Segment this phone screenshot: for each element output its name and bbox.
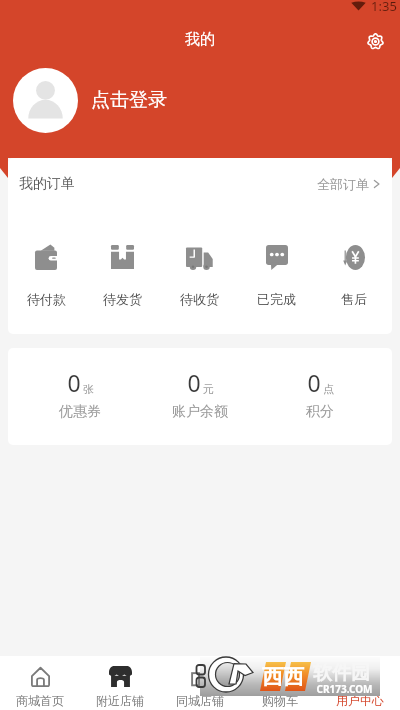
staticText: 0 xyxy=(67,367,81,398)
staticText: 购物车 xyxy=(262,693,298,708)
button[interactable]: 售后 xyxy=(315,210,392,334)
button[interactable]: Settings xyxy=(360,26,390,56)
staticText: 同城店铺 xyxy=(176,693,224,708)
staticText: 张 xyxy=(83,382,94,396)
staticText: 待发货 xyxy=(103,291,142,307)
staticText: 我的订单 xyxy=(19,175,75,193)
staticText: 全部订单 xyxy=(317,176,369,192)
staticText: 点 xyxy=(323,382,334,396)
button[interactable]: 已完成 xyxy=(238,210,315,334)
staticText: 已完成 xyxy=(257,291,296,307)
button[interactable]: 附近店铺 xyxy=(80,656,160,710)
button[interactable]: 0 xyxy=(20,367,140,421)
staticText: 待付款 xyxy=(27,291,66,307)
staticText: 优惠券 xyxy=(59,403,101,421)
button[interactable]: 用户中心 xyxy=(320,656,400,710)
staticText: 积分 xyxy=(306,403,334,421)
button[interactable]: 购物车 xyxy=(240,656,320,710)
button[interactable]: 待付款 xyxy=(8,210,84,334)
staticText: 0 xyxy=(307,367,321,398)
staticText: 商城首页 xyxy=(16,693,64,708)
button[interactable]: 商城首页 xyxy=(0,656,80,710)
button[interactable]: 0 xyxy=(260,367,380,421)
staticText: 待收货 xyxy=(180,291,219,307)
staticText: 附近店铺 xyxy=(96,693,144,708)
staticText: 1:35 xyxy=(371,0,397,15)
staticText: 我的 xyxy=(185,30,215,49)
staticText: 软件园 xyxy=(313,661,370,685)
staticText: 账户余额 xyxy=(172,403,228,421)
staticText: 元 xyxy=(203,382,214,396)
staticText: 用户中心 xyxy=(336,693,384,708)
staticText: 西西 xyxy=(262,664,304,690)
staticText: CR173.COM xyxy=(316,682,373,696)
staticText: 0 xyxy=(187,367,201,398)
button[interactable]: 我的订单 xyxy=(8,158,392,210)
staticText: 点击登录 xyxy=(91,88,167,112)
button[interactable]: 同城店铺 xyxy=(160,656,240,710)
staticText: 售后 xyxy=(341,291,367,307)
button[interactable]: 0 xyxy=(140,367,260,421)
button[interactable]: 待发货 xyxy=(84,210,161,334)
button[interactable]: 点击登录 xyxy=(0,65,400,135)
button[interactable]: 待收货 xyxy=(161,210,238,334)
